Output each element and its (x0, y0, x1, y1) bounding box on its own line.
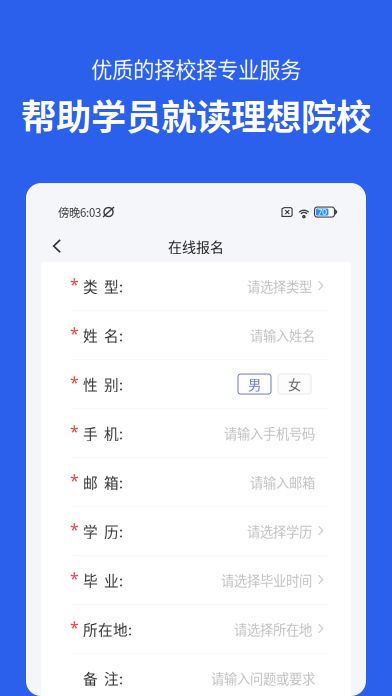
staticText: 请选择学历 (247, 521, 312, 541)
staticText: 毕 业: (83, 569, 123, 591)
staticText: 手 机: (83, 422, 123, 444)
button[interactable] (41, 654, 351, 696)
button[interactable]: Back (43, 232, 71, 260)
button[interactable]: * (41, 507, 351, 556)
staticText: * (70, 518, 79, 540)
staticText: 女 (288, 374, 301, 394)
button[interactable]: 女 (278, 374, 311, 394)
staticText: 请选择类型 (247, 276, 312, 296)
staticText: 傍晚6:03 (58, 204, 101, 220)
staticText: 请输入问题或要求 (211, 668, 315, 688)
staticText: 请选择毕业时间 (221, 570, 312, 590)
button[interactable]: * (41, 311, 351, 360)
button[interactable]: * (41, 360, 351, 409)
staticText: * (70, 371, 79, 393)
button[interactable]: * (41, 458, 351, 507)
button[interactable]: 男 (238, 374, 271, 394)
staticText: 请输入邮箱 (250, 472, 315, 492)
staticText: * (70, 616, 79, 638)
staticText: 请输入手机号码 (224, 423, 315, 443)
button[interactable]: * (41, 605, 351, 654)
staticText: * (70, 273, 79, 295)
staticText: 备 注: (83, 667, 123, 689)
staticText: 邮 箱: (83, 471, 123, 493)
staticText: 在线报名 (168, 236, 224, 256)
staticText: 70 (318, 207, 327, 217)
staticText: 类 型: (83, 275, 123, 297)
staticText: 性 别: (83, 373, 123, 395)
staticText: 学 历: (83, 520, 123, 542)
staticText: * (70, 322, 79, 344)
staticText: 请选择所在地 (234, 619, 312, 639)
staticText: 男 (248, 374, 261, 394)
staticText: 请输入姓名 (250, 325, 315, 345)
button[interactable]: * (41, 556, 351, 605)
button[interactable]: * (41, 262, 351, 311)
staticText: * (70, 469, 79, 491)
staticText: * (70, 420, 79, 442)
staticText: 优质的择校择专业服务 (91, 53, 301, 84)
button[interactable]: * (41, 409, 351, 458)
staticText: 姓 名: (83, 324, 123, 346)
staticText: * (70, 567, 79, 589)
staticText: 所在地: (83, 618, 132, 640)
staticText: 帮助学员就读理想院校 (21, 89, 371, 140)
